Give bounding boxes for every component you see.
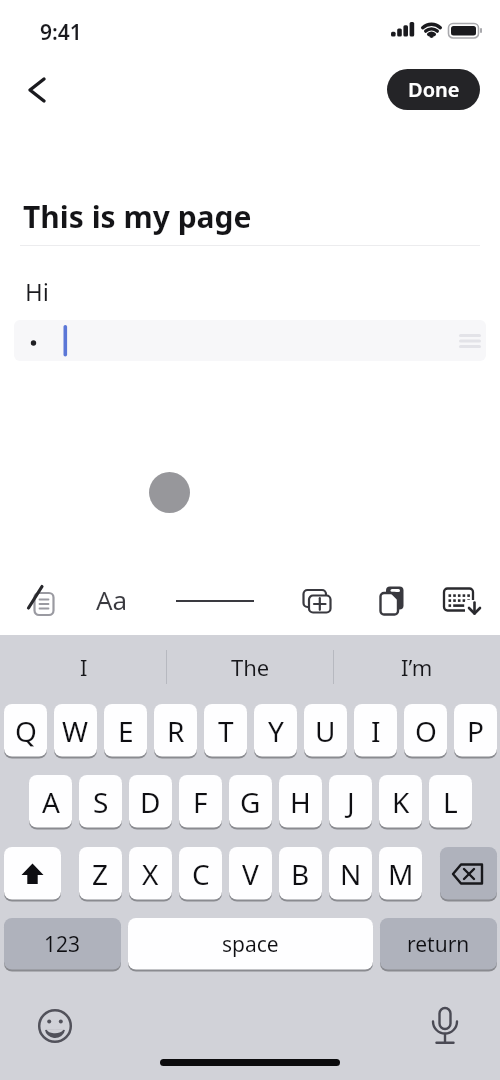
staticText: W [62,712,89,750]
button[interactable]: F [179,775,222,829]
button[interactable] [295,578,339,620]
staticText: Hi [25,275,49,308]
staticText: A [42,783,60,821]
button[interactable] [20,578,62,620]
button[interactable]: Z [79,847,122,901]
staticText: F [193,783,208,821]
button[interactable]: Done [387,69,480,110]
button[interactable]: H [279,775,322,829]
button[interactable]: 123 [4,918,121,971]
button[interactable]: X [129,847,172,901]
staticText: V [242,855,259,893]
staticText: Z [92,855,109,893]
button[interactable] [370,578,412,620]
button[interactable]: J [329,775,372,829]
staticText: D [140,783,161,821]
button[interactable]: W [54,704,97,758]
staticText: 123 [44,930,81,959]
staticText: T [218,712,234,750]
button[interactable]: G [229,775,272,829]
staticText: K [392,783,410,821]
button[interactable]: The [167,640,334,694]
staticText: The [231,652,270,682]
button[interactable]: C [179,847,222,901]
button[interactable]: I [354,704,397,758]
staticText: R [167,712,185,750]
staticText: return [407,930,470,959]
staticText: P [467,712,484,750]
button[interactable]: Y [254,704,297,758]
button[interactable]: M [379,847,422,901]
button[interactable]: V [229,847,272,901]
staticText: This is my page [23,196,252,237]
staticText: Done [408,76,460,103]
staticText: E [118,712,134,750]
button[interactable] [16,68,58,112]
staticText: Q [15,712,37,750]
button[interactable]: K [379,775,422,829]
staticText: B [291,855,310,893]
button[interactable]: E [104,704,147,758]
staticText: H [290,783,311,821]
button[interactable] [4,847,61,901]
staticText: I [80,652,88,682]
staticText: Y [268,712,284,750]
button[interactable] [429,1005,461,1045]
staticText: L [443,783,458,821]
button[interactable]: P [454,704,497,758]
button[interactable]: O [404,704,447,758]
button[interactable]: B [279,847,322,901]
button[interactable]: return [380,918,497,971]
button[interactable]: A [29,775,72,829]
button[interactable] [435,578,490,620]
button[interactable] [440,847,497,901]
staticText: J [347,783,355,821]
button[interactable]: space [128,918,373,971]
button[interactable]: L [429,775,472,829]
staticText: I [371,712,381,750]
staticText: 9:41 [40,18,82,47]
button[interactable] [14,320,486,361]
staticText: O [415,712,437,750]
staticText: M [388,855,414,893]
button[interactable]: S [79,775,122,829]
staticText: C [192,855,210,893]
staticText: S [93,783,109,821]
button[interactable]: U [304,704,347,758]
button[interactable]: T [204,704,247,758]
button[interactable]: I [0,640,167,694]
button[interactable]: N [329,847,372,901]
staticText: U [315,712,336,750]
button[interactable]: I’m [333,640,500,694]
staticText: N [340,855,362,893]
staticText: I’m [401,652,433,682]
button[interactable]: Q [4,704,47,758]
button[interactable]: Aa [90,580,134,618]
button[interactable]: D [129,775,172,829]
button[interactable] [38,1009,72,1043]
staticText: G [240,783,261,821]
button[interactable] [170,585,260,617]
staticText: space [222,930,279,959]
button[interactable]: R [154,704,197,758]
staticText: X [142,855,159,893]
staticText: Aa [96,582,128,617]
